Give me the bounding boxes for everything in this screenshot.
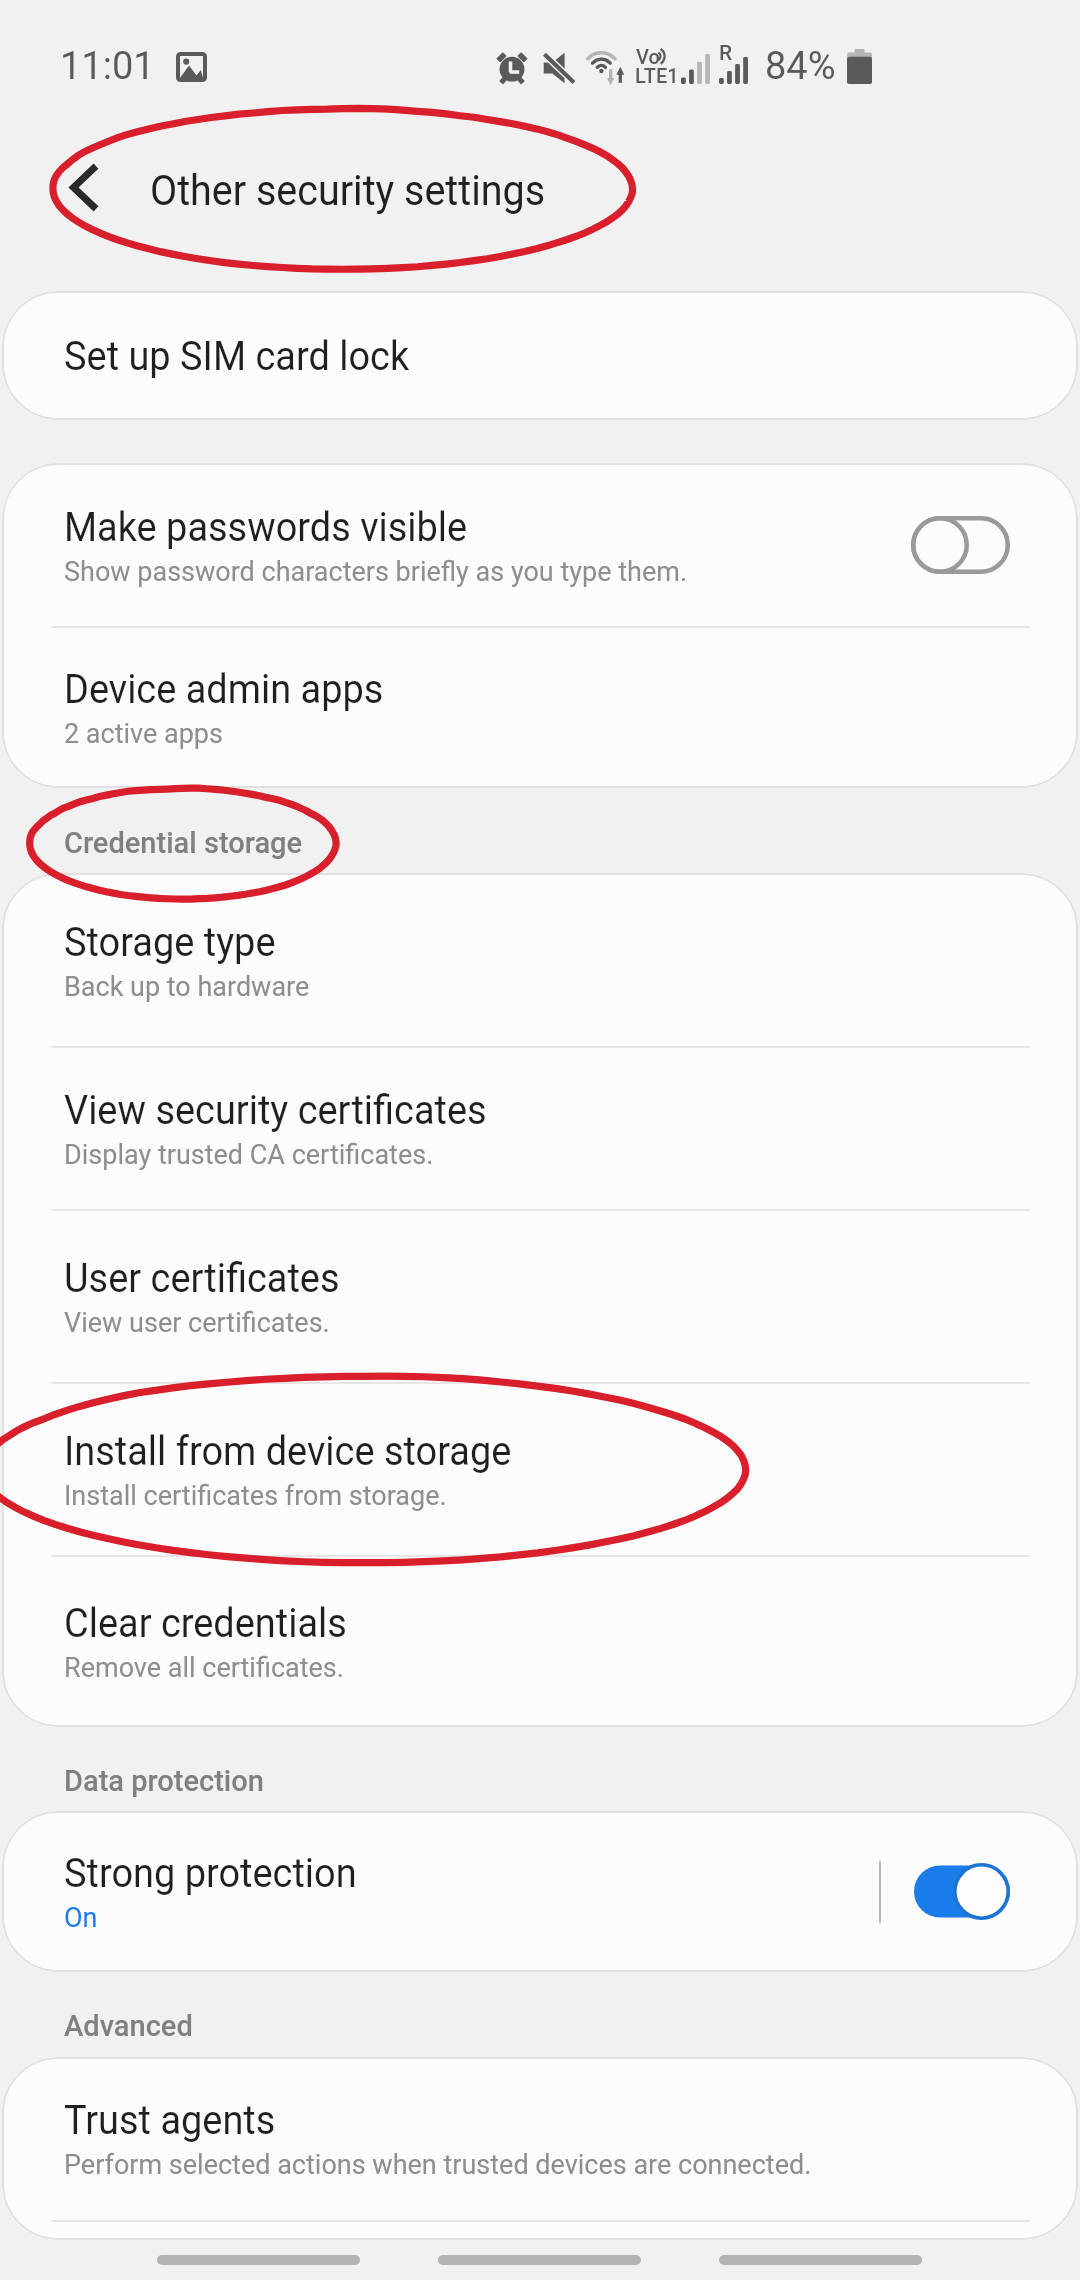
staticText: On (64, 1902, 98, 1934)
staticText: Other security settings (150, 166, 546, 215)
button[interactable]: Set up SIM card lock (2, 291, 1078, 420)
staticText: LTE1 (635, 64, 679, 87)
staticText: R (719, 41, 733, 66)
staticText: Advanced (64, 2009, 193, 2043)
staticText: Storage type (64, 918, 276, 966)
button[interactable]: User certificates (2, 1210, 1078, 1383)
staticText: Trust agents (64, 2096, 276, 2144)
staticText: Strong protection (64, 1849, 357, 1897)
staticText: Device admin apps (64, 665, 384, 713)
button[interactable]: Other security settings (150, 114, 650, 266)
staticText: Remove all certificates. (64, 1652, 344, 1684)
staticText: Make passwords visible (64, 503, 467, 551)
staticText: Vo (636, 45, 660, 68)
staticText: Set up SIM card lock (64, 332, 410, 380)
staticText: View user certificates. (64, 1307, 330, 1339)
staticText: Install from device storage (64, 1427, 512, 1475)
staticText: 2 active apps (64, 718, 223, 750)
button[interactable]: Storage type (2, 873, 1078, 1047)
staticText: View security certificates (64, 1086, 487, 1134)
staticText: Clear credentials (64, 1599, 347, 1647)
button[interactable]: Strong protection (2, 1811, 1078, 1972)
button[interactable]: Device admin apps (2, 627, 1078, 788)
button[interactable]: Trust agents (2, 2057, 1078, 2220)
staticText: 11:01 (60, 44, 155, 89)
button[interactable]: Install from device storage (2, 1383, 1078, 1556)
staticText: 84% (765, 44, 836, 89)
staticText: Show password characters briefly as you … (64, 556, 688, 588)
button[interactable]: Make passwords visible (2, 463, 1078, 627)
button[interactable]: Navigate up (40, 144, 126, 230)
staticText: Credential storage (64, 826, 303, 860)
staticText: Install certificates from storage. (64, 1480, 447, 1512)
staticText: Perform selected actions when trusted de… (64, 2149, 812, 2181)
staticText: Display trusted CA certificates. (64, 1139, 434, 1171)
button[interactable]: Clear credentials (2, 1556, 1078, 1727)
staticText: Back up to hardware (64, 971, 310, 1003)
staticText: User certificates (64, 1254, 340, 1302)
staticText: Data protection (64, 1764, 264, 1798)
button[interactable]: View security certificates (2, 1047, 1078, 1210)
